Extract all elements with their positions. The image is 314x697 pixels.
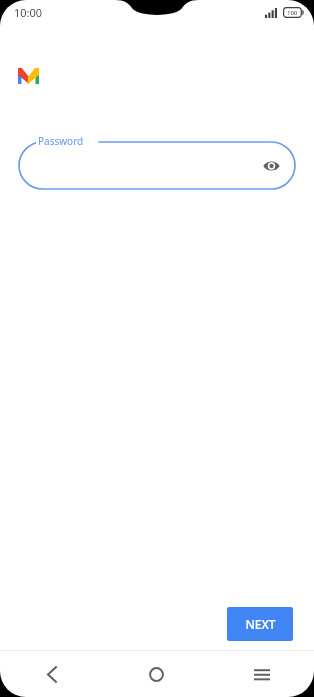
button[interactable]: Show password xyxy=(258,153,284,179)
button[interactable]: Password xyxy=(19,134,295,189)
staticText: 100 xyxy=(287,9,298,17)
button[interactable]: NEXT xyxy=(227,607,293,641)
staticText: NEXT xyxy=(245,616,276,632)
staticText: Password xyxy=(38,134,84,148)
staticText: 10:00 xyxy=(14,5,43,20)
button[interactable]: Back xyxy=(0,651,104,697)
button[interactable]: Home xyxy=(104,651,209,697)
button[interactable]: Recent apps xyxy=(209,651,314,697)
